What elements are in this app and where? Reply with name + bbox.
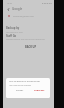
button[interactable]: Back	[5, 6, 11, 12]
staticText: Staff Go	[6, 34, 17, 38]
staticText: Google	[12, 7, 23, 11]
staticText: Last backup 2 days	[6, 31, 23, 34]
staticText: TURN OFF	[34, 89, 45, 92]
button[interactable]: BACK UP	[23, 44, 39, 50]
button[interactable]: CANCEL	[15, 88, 25, 93]
staticText: BACK UP	[25, 45, 37, 49]
button[interactable]: nickname@gmail.com	[3, 13, 54, 19]
staticText: nickname@gmail.com	[13, 15, 34, 18]
staticText: Manage backup and data across devices et…	[6, 38, 45, 41]
button[interactable]: TURN OFF	[33, 88, 46, 93]
staticText: Turn off Backup to Google Drive?	[9, 80, 40, 83]
staticText: 10:30	[7, 2, 12, 5]
staticText: CANCEL	[16, 89, 24, 92]
staticText: Your data will be removed	[9, 84, 31, 86]
staticText: Backup by	[6, 26, 20, 30]
staticText: ▪ ▪ ▪ ▪ ▪ ▪	[42, 2, 52, 4]
